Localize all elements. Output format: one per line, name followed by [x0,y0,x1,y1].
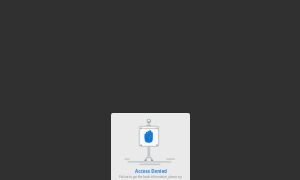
staticText: Access Denied [135,168,167,174]
button[interactable]: Access Denied [111,113,190,180]
staticText: Failure to get the book information, ple… [119,175,182,179]
